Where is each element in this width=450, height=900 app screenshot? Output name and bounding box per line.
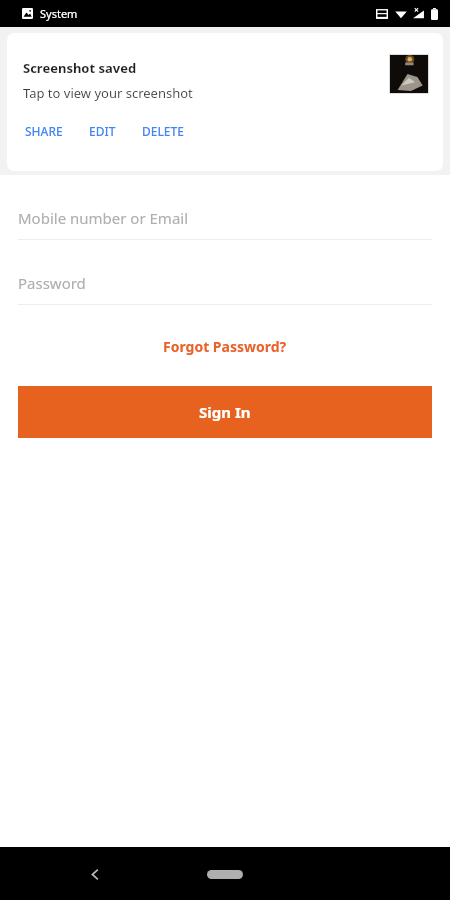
staticText: DELETE xyxy=(142,123,184,139)
button[interactable]: SHARE xyxy=(23,121,65,141)
staticText: Tap to view your screenshot xyxy=(23,84,193,102)
button[interactable]: Sign In xyxy=(18,386,432,438)
button[interactable]: EDIT xyxy=(87,121,118,141)
staticText: SHARE xyxy=(25,123,63,139)
staticText: Screenshot saved xyxy=(23,59,137,77)
staticText: Forgot Password? xyxy=(163,337,287,356)
button[interactable]: Password xyxy=(18,268,432,305)
button[interactable]: Mobile number or Email xyxy=(18,203,432,240)
button[interactable]: Back xyxy=(78,857,112,891)
staticText: Password xyxy=(18,273,86,293)
staticText: System xyxy=(40,6,78,21)
staticText: Sign In xyxy=(199,402,251,422)
staticText: Mobile number or Email xyxy=(18,208,189,228)
button[interactable]: DELETE xyxy=(140,121,186,141)
button[interactable]: Screenshot saved xyxy=(7,33,443,171)
button[interactable]: Home xyxy=(195,859,255,889)
button[interactable]: Forgot Password? xyxy=(157,333,293,360)
staticText: EDIT xyxy=(89,123,116,139)
